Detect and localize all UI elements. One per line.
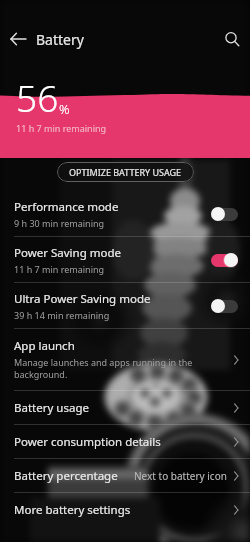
- staticText: Battery: [36, 30, 84, 49]
- staticText: 11 h 7 min remaining: [16, 122, 107, 134]
- button[interactable]: OPTIMIZE BATTERY USAGE: [57, 162, 194, 182]
- staticText: Power Saving mode: [14, 245, 121, 261]
- staticText: 11 h 7 min remaining: [14, 263, 105, 275]
- staticText: 9 h 30 min remaining: [14, 217, 105, 229]
- button[interactable]: Battery percentage: [0, 459, 250, 492]
- staticText: Next to battery icon: [134, 469, 227, 483]
- staticText: More battery settings: [14, 502, 131, 518]
- staticText: %: [59, 100, 70, 118]
- staticText: Manage launches and apps running in the …: [14, 356, 227, 381]
- staticText: Battery percentage: [14, 468, 118, 484]
- button[interactable]: Ultra Power Saving mode: [0, 283, 250, 328]
- staticText: 39 h 14 min remaining: [14, 309, 110, 321]
- button[interactable]: Battery usage: [0, 391, 250, 424]
- button[interactable]: More battery settings: [0, 493, 250, 526]
- button[interactable]: Toggle: [211, 206, 238, 222]
- staticText: Power consumption details: [14, 434, 161, 450]
- staticText: Battery usage: [14, 400, 89, 416]
- button[interactable]: Power Saving mode: [0, 237, 250, 282]
- staticText: Ultra Power Saving mode: [14, 291, 151, 307]
- button[interactable]: Toggle: [211, 252, 238, 268]
- button[interactable]: Power consumption details: [0, 425, 250, 458]
- staticText: 56: [16, 72, 59, 122]
- button[interactable]: App launch: [0, 329, 250, 390]
- button[interactable]: Back: [0, 21, 36, 57]
- staticText: App launch: [14, 338, 75, 354]
- button[interactable]: Search: [214, 21, 250, 57]
- staticText: OPTIMIZE BATTERY USAGE: [69, 166, 182, 178]
- button[interactable]: Toggle: [211, 298, 238, 314]
- button[interactable]: Performance mode: [0, 191, 250, 236]
- staticText: Performance mode: [14, 199, 119, 215]
